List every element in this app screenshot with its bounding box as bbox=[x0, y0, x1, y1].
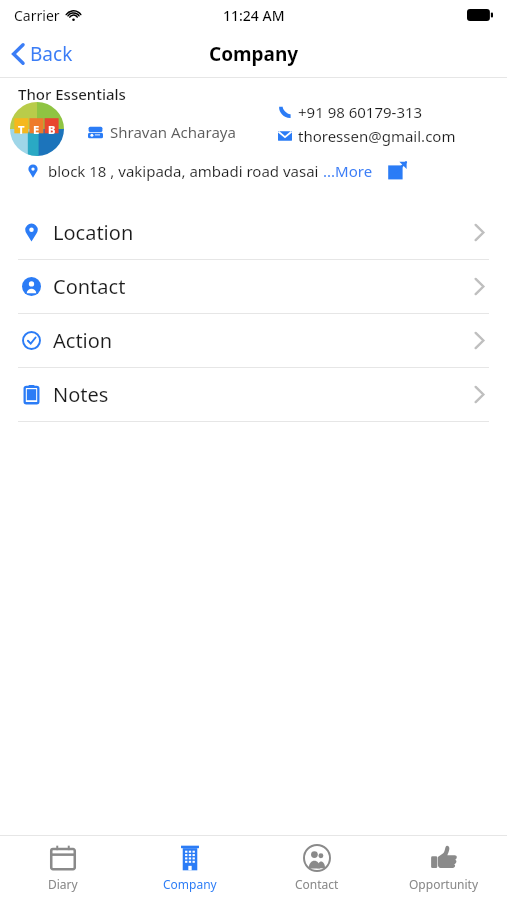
staticText: thoressen@gmail.com bbox=[298, 126, 456, 146]
button[interactable]: Open in maps bbox=[387, 161, 407, 181]
staticText: Thor Essentials bbox=[18, 84, 126, 104]
button[interactable]: Notes bbox=[0, 368, 507, 421]
button[interactable]: Contact bbox=[253, 836, 380, 900]
staticText: Opportunity bbox=[409, 876, 479, 892]
button[interactable]: Company bbox=[126, 836, 253, 900]
staticText: Contact bbox=[295, 876, 339, 892]
button[interactable]: Back bbox=[0, 35, 85, 73]
button[interactable]: Location bbox=[0, 206, 507, 259]
staticText: +91 98 60179-313 bbox=[298, 102, 423, 122]
staticText: E bbox=[33, 122, 40, 137]
staticText: T bbox=[18, 122, 25, 137]
staticText: Contact bbox=[53, 273, 126, 300]
staticText: Action bbox=[53, 327, 113, 354]
staticText: Notes bbox=[53, 381, 109, 408]
staticText: Carrier bbox=[14, 6, 60, 25]
button[interactable]: Contact bbox=[0, 260, 507, 313]
button[interactable]: Diary bbox=[0, 836, 126, 900]
staticText: Company bbox=[209, 41, 299, 67]
staticText: block 18 , vakipada, ambadi road vasai bbox=[48, 161, 323, 181]
staticText: 11:24 AM bbox=[223, 6, 285, 25]
staticText: Back bbox=[30, 41, 73, 67]
staticText: Location bbox=[53, 219, 134, 246]
button[interactable]: ...More bbox=[323, 161, 373, 181]
staticText: Shravan Acharaya bbox=[110, 122, 236, 142]
staticText: Diary bbox=[48, 876, 78, 892]
button[interactable]: Opportunity bbox=[380, 836, 507, 900]
button[interactable]: Action bbox=[0, 314, 507, 367]
staticText: Company bbox=[163, 876, 217, 892]
staticText: B bbox=[48, 122, 56, 137]
